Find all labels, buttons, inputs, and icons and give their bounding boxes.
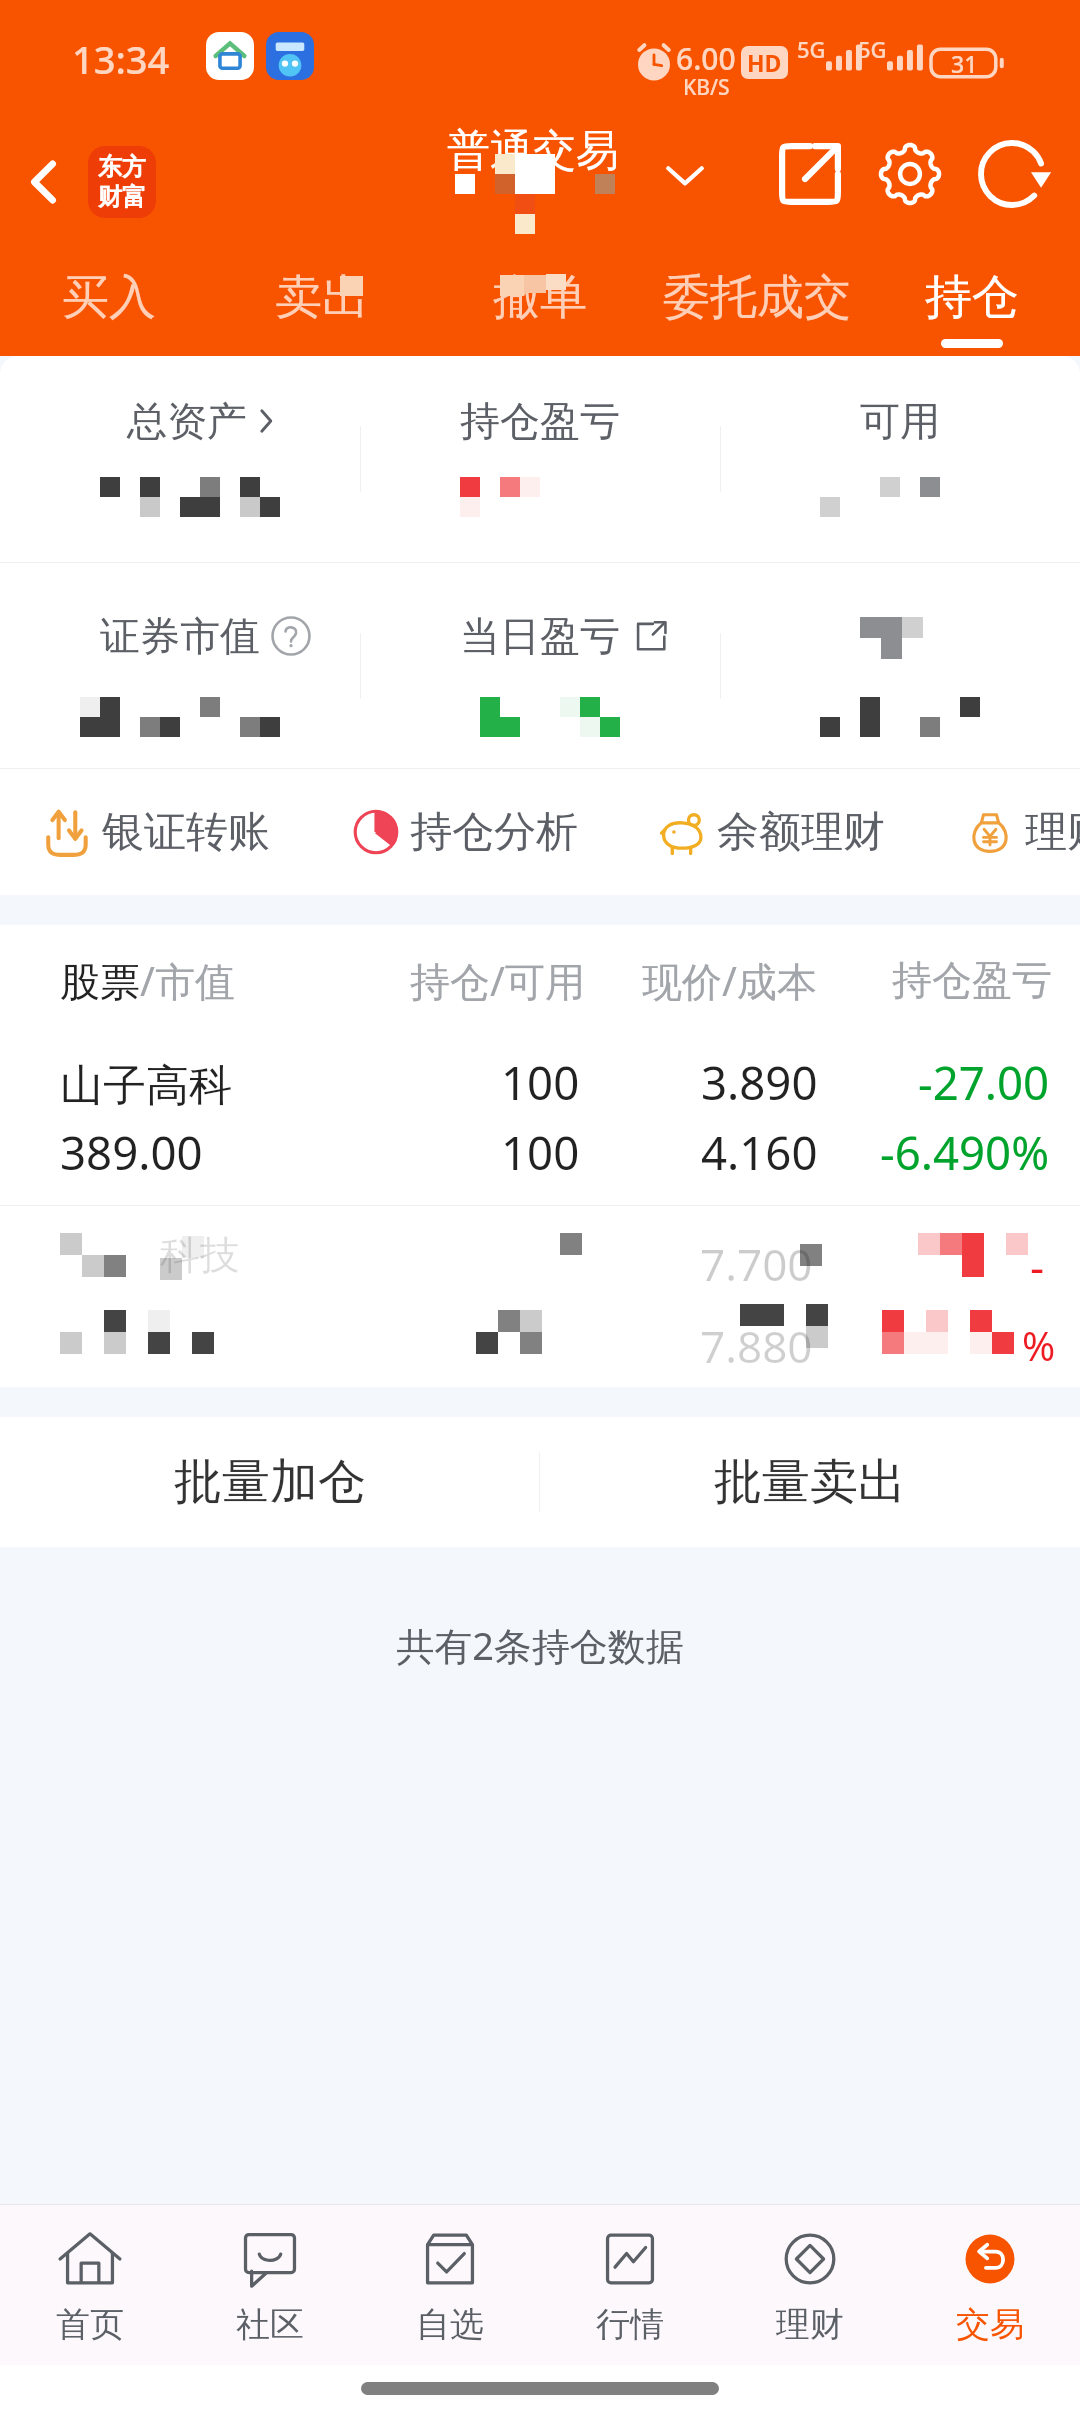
staticText: 余额理财	[717, 806, 885, 859]
staticText: 5G	[858, 34, 887, 64]
button[interactable]: 理财	[720, 2205, 900, 2365]
staticText: 持仓盈亏	[892, 955, 1052, 1005]
button[interactable]: Open external	[770, 134, 850, 214]
button[interactable]: 可用	[860, 396, 940, 446]
staticText: 4.160	[701, 1121, 818, 1183]
staticText: 银证转账	[102, 806, 270, 859]
staticText: 共有2条持仓数据	[0, 1619, 1080, 1671]
button[interactable]: 持仓盈亏	[460, 396, 620, 446]
staticText: 财富	[98, 182, 146, 212]
button[interactable]: Back	[6, 144, 82, 220]
button[interactable]: 社区	[180, 2205, 360, 2365]
button[interactable]: 山子高科	[0, 1031, 1080, 1205]
button[interactable]: 卖出	[257, 252, 387, 356]
staticText: 行情	[596, 2303, 664, 2346]
staticText: 股票/市值	[60, 953, 235, 1008]
staticText: 买入	[62, 268, 156, 327]
staticText: 持仓/可用	[410, 953, 585, 1008]
button[interactable]: 科技	[0, 1206, 1080, 1387]
button[interactable]: Settings	[870, 134, 950, 214]
button[interactable]: 普通交易	[447, 124, 619, 178]
staticText: 撤单	[493, 268, 587, 327]
staticText: 山子高科	[60, 1059, 232, 1113]
staticText: 7.700	[700, 1234, 813, 1294]
staticText: 社区	[236, 2303, 304, 2346]
staticText: 理财	[776, 2303, 844, 2346]
staticText: 6.00	[676, 38, 736, 79]
staticText: -6.490%	[880, 1121, 1050, 1183]
button[interactable]: Refresh	[977, 134, 1057, 214]
staticText: 自选	[416, 2303, 484, 2346]
staticText: 交易	[956, 2303, 1024, 2346]
staticText: 现价/成本	[642, 953, 817, 1008]
staticText: HD	[747, 47, 782, 78]
button[interactable]: 理财	[963, 769, 1080, 895]
staticText: 理财	[1025, 806, 1080, 859]
button[interactable]: 交易	[900, 2205, 1080, 2365]
staticText: 持仓	[925, 268, 1019, 327]
staticText: 普通交易	[447, 124, 619, 178]
button[interactable]: 总资产	[127, 396, 247, 446]
staticText: 批量卖出	[714, 1452, 906, 1512]
button[interactable]: 自选	[360, 2205, 540, 2365]
staticText: -27.00	[918, 1051, 1050, 1113]
staticText: 13:34	[72, 33, 170, 85]
staticText: 100	[501, 1121, 580, 1183]
button[interactable]: 批量卖出	[540, 1417, 1080, 1547]
button[interactable]: 持仓	[907, 252, 1037, 356]
button[interactable]: 余额理财	[655, 769, 885, 895]
staticText: 东方	[98, 152, 146, 182]
staticText: 首页	[56, 2303, 124, 2346]
button[interactable]: 买入	[44, 252, 174, 356]
button[interactable]: 东方	[88, 146, 156, 218]
staticText: 3.890	[701, 1051, 818, 1113]
button[interactable]: 持仓分析	[350, 769, 578, 895]
staticText: 科技	[160, 1230, 240, 1280]
staticText: -	[1030, 1236, 1045, 1296]
button[interactable]: 委托成交	[657, 252, 857, 356]
staticText: 5G	[797, 34, 826, 64]
button[interactable]: 当日盈亏	[460, 611, 620, 661]
staticText: 委托成交	[663, 268, 851, 327]
staticText: 批量加仓	[174, 1452, 366, 1512]
button[interactable]: Switch account	[664, 154, 706, 196]
button[interactable]: 首页	[0, 2205, 180, 2365]
staticText: 持仓分析	[410, 806, 578, 859]
button[interactable]: 撤单	[475, 252, 605, 356]
staticText: 100	[501, 1051, 580, 1113]
button[interactable]: 银证转账	[42, 769, 270, 895]
button[interactable]: 证券市值	[100, 611, 260, 661]
staticText: 389.00	[60, 1121, 203, 1183]
staticText: 卖出	[275, 268, 369, 327]
staticText: 31	[951, 48, 978, 79]
button[interactable]: 批量加仓	[0, 1417, 539, 1547]
staticText: 7.880	[700, 1316, 813, 1376]
button[interactable]: 行情	[540, 2205, 720, 2365]
staticText: KB/S	[683, 73, 730, 102]
staticText: %	[1022, 1318, 1056, 1372]
